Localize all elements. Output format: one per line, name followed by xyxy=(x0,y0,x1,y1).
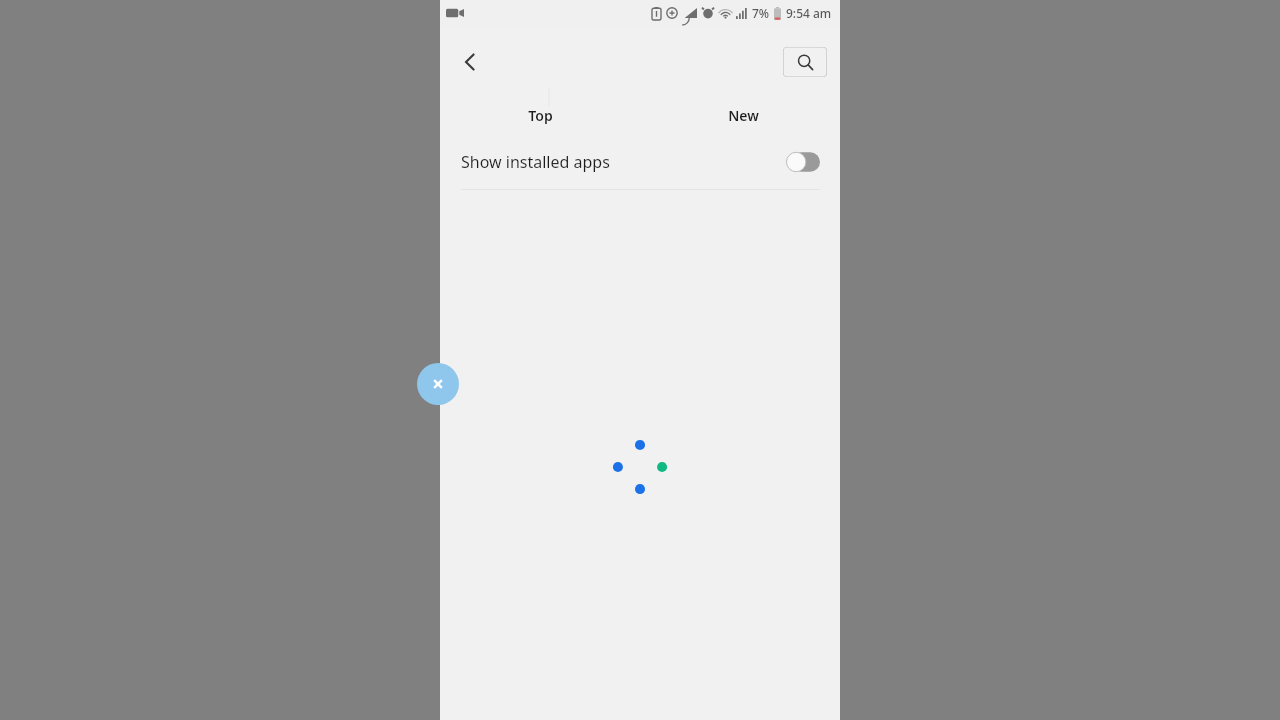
staticText: Show installed apps xyxy=(461,151,610,173)
button[interactable]: Show installed apps toggle xyxy=(786,151,820,173)
button[interactable]: Show installed apps xyxy=(440,134,840,189)
staticText: New xyxy=(728,106,759,125)
button[interactable]: Back xyxy=(448,40,492,84)
button[interactable]: Close xyxy=(417,363,459,405)
staticText: Top xyxy=(528,106,553,125)
button[interactable]: New xyxy=(640,88,840,134)
staticText: 9:54 am xyxy=(786,5,832,21)
staticText: 7% xyxy=(752,5,770,21)
button[interactable]: Top xyxy=(440,88,640,134)
button[interactable]: Search xyxy=(783,47,827,77)
